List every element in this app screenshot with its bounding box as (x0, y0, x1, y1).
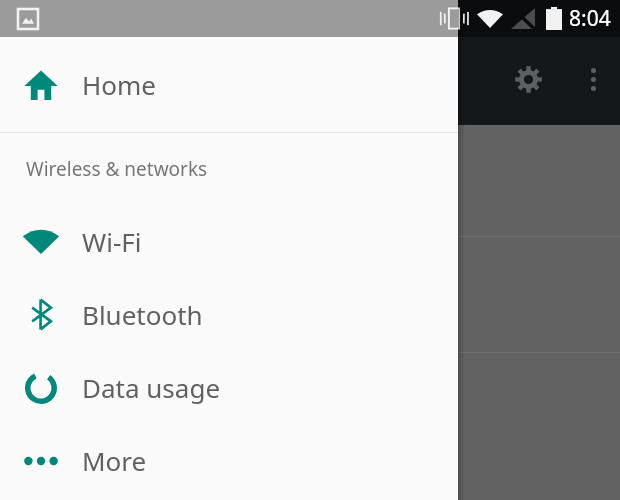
staticText: More (82, 443, 147, 478)
staticText: 8:04 (569, 4, 611, 33)
staticText: Wi-Fi (82, 224, 142, 259)
button[interactable]: Wi-Fi (0, 205, 458, 278)
button[interactable]: Settings (504, 55, 552, 103)
button[interactable]: More (0, 424, 458, 497)
button[interactable]: Bluetooth (0, 278, 458, 351)
button[interactable]: More options (569, 55, 617, 103)
staticText: Home (82, 67, 156, 102)
staticText: Wireless & networks (26, 156, 208, 182)
staticText: Bluetooth (82, 297, 203, 332)
button[interactable]: Data usage (0, 351, 458, 424)
staticText: Data usage (82, 370, 221, 405)
button[interactable]: Home (0, 37, 458, 132)
